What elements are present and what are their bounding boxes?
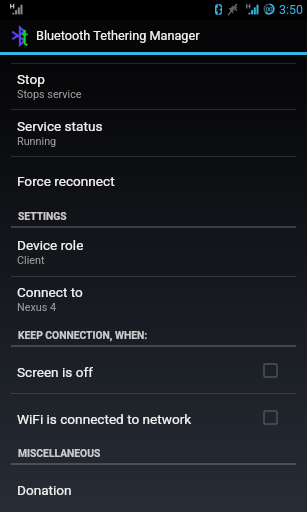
staticText: Running	[17, 135, 57, 148]
staticText: KEEP CONNECTION, WHEN:	[18, 329, 148, 341]
button[interactable]: Stop	[0, 63, 307, 109]
staticText: 3:50	[279, 2, 303, 17]
staticText: Device role	[17, 237, 84, 253]
staticText: Bluetooth Tethering Manager	[36, 28, 200, 43]
staticText: Stops service	[17, 88, 82, 101]
staticText: Donation	[17, 482, 72, 498]
button[interactable]: WiFi is connected to network	[0, 393, 307, 440]
button[interactable]: Service status	[0, 109, 307, 156]
staticText: Client	[17, 254, 45, 267]
staticText: Stop	[17, 71, 45, 87]
button[interactable]: Screen is off	[256, 357, 282, 383]
button[interactable]: Force reconnect	[0, 156, 307, 202]
staticText: Screen is off	[17, 364, 93, 380]
staticText: MISCELLANEOUS	[18, 447, 101, 459]
staticText: SETTINGS	[18, 210, 67, 222]
staticText: Connect to	[17, 284, 83, 300]
button[interactable]: Device role	[0, 228, 307, 276]
staticText: Nexus 4	[17, 301, 57, 314]
button[interactable]: Screen is off	[0, 346, 307, 393]
button[interactable]: Donation	[0, 464, 307, 512]
staticText: Service status	[17, 118, 103, 134]
staticText: Force reconnect	[17, 173, 115, 189]
button[interactable]: WiFi is connected to network	[256, 404, 282, 430]
staticText: WiFi is connected to network	[17, 411, 192, 427]
button[interactable]: Connect to	[0, 276, 307, 322]
